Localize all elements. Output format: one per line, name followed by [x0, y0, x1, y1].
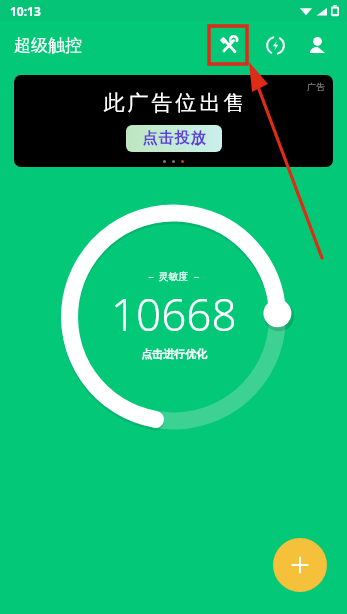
staticText: 广告 [307, 81, 325, 92]
button[interactable]: 广告 [14, 75, 333, 167]
button[interactable]: Tools [207, 24, 249, 66]
button[interactable]: － 灵敏度 － [0, 185, 347, 445]
staticText: － 灵敏度 － [146, 269, 202, 283]
button[interactable]: 点击投放 [126, 125, 222, 152]
button[interactable]: Add [273, 538, 327, 592]
staticText: 此广告位出售 [102, 90, 246, 116]
staticText: 点击投放 [142, 129, 206, 148]
button[interactable]: Boost [255, 25, 295, 65]
staticText: 点击进行优化 [141, 347, 207, 361]
button[interactable]: Profile [297, 25, 337, 65]
staticText: 超级触控 [14, 35, 82, 56]
staticText: 10668 [111, 284, 237, 344]
staticText: 10:13 [10, 3, 41, 19]
